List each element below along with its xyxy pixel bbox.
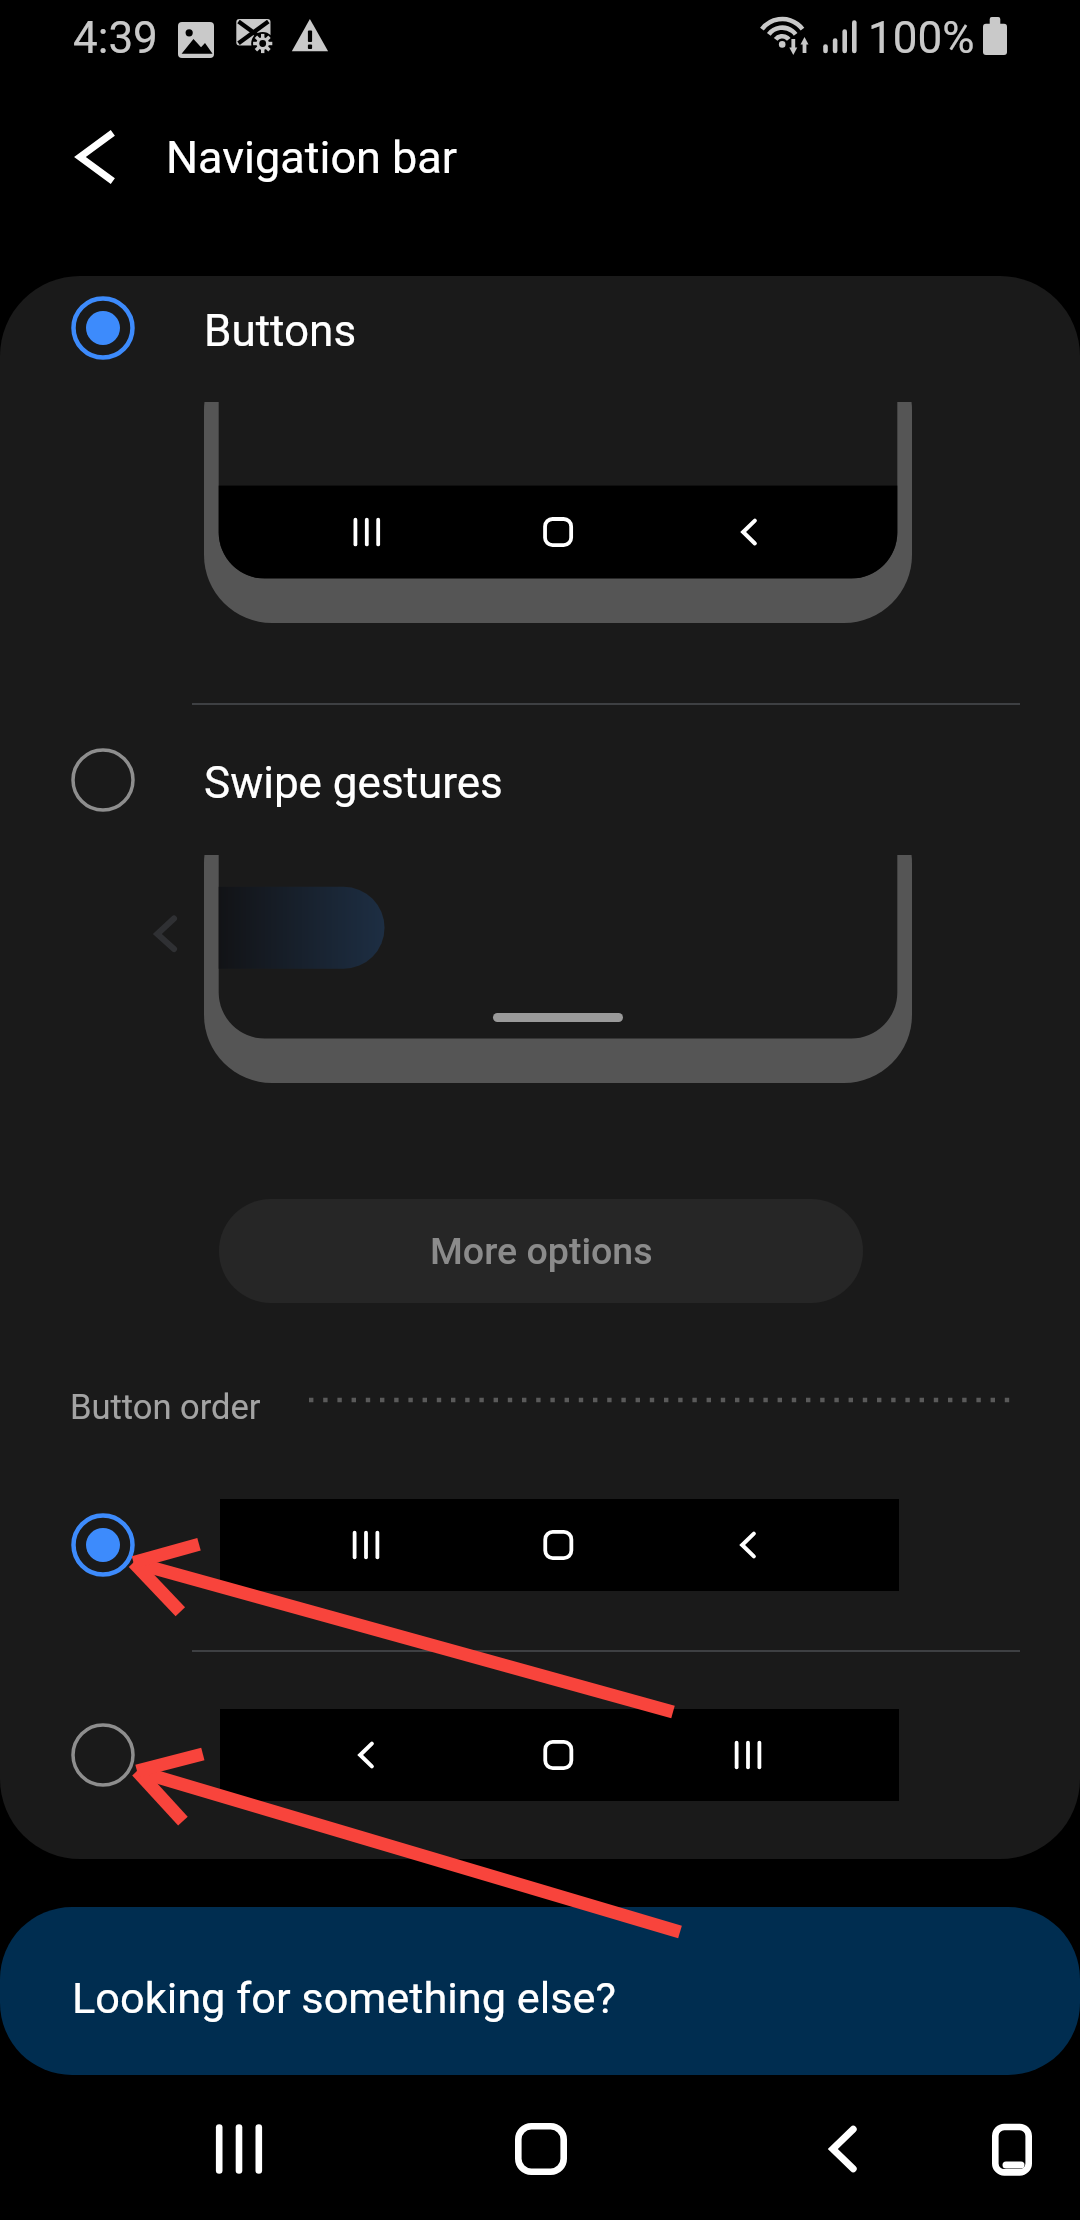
staticText: More options [430,1229,653,1273]
staticText: 4:39 [73,12,158,64]
button[interactable]: Back [783,2089,903,2209]
staticText: Button order [70,1387,261,1427]
button[interactable]: Home [481,2089,601,2209]
staticText: Looking for something else? [72,1973,617,2024]
button[interactable] [0,1700,1080,1810]
button[interactable]: Navigate up [50,112,140,202]
button[interactable]: Swipe gestures [0,730,1080,830]
staticText: Swipe gestures [204,757,503,809]
button[interactable]: Hide keyboard [952,2089,1072,2209]
button[interactable]: More options [219,1199,863,1303]
button[interactable]: Looking for something else? [0,1907,1080,2075]
staticText: Buttons [204,305,357,357]
button[interactable] [0,1490,1080,1600]
staticText: 100% [868,12,975,64]
button[interactable]: Recent apps [179,2089,299,2209]
staticText: Navigation bar [166,131,458,184]
button[interactable]: Buttons [0,278,1080,378]
